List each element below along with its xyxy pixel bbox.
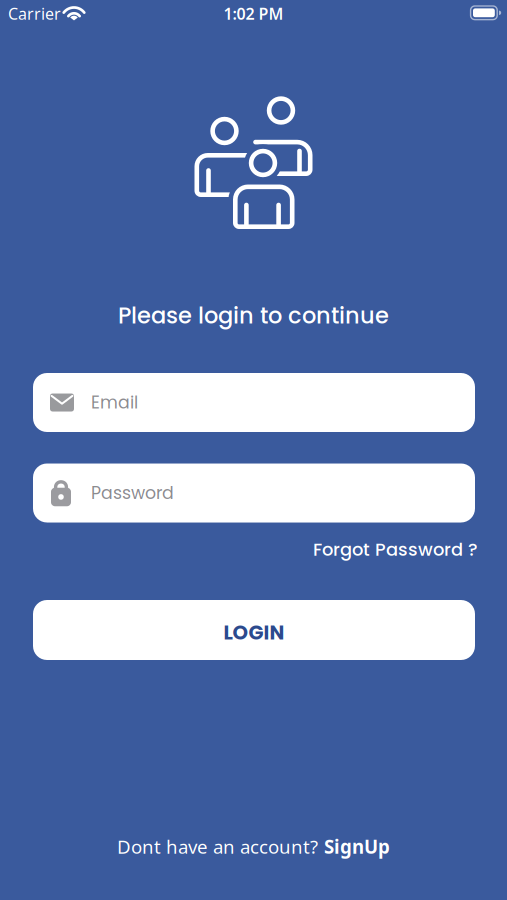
button[interactable]: Forgot Password ? (313, 537, 478, 562)
staticText: Password (91, 481, 174, 505)
button[interactable]: LOGIN (33, 600, 475, 660)
staticText: LOGIN (223, 619, 284, 646)
staticText: 1:02 PM (223, 3, 283, 24)
button[interactable]: Email (33, 373, 475, 432)
staticText: Forgot Password ? (313, 537, 478, 562)
staticText: Email (91, 390, 138, 415)
staticText: Carrier (8, 3, 61, 24)
staticText: SignUp (324, 834, 390, 859)
button[interactable]: Password (33, 463, 475, 522)
staticText: Please login to continue (118, 300, 389, 331)
staticText: Dont have an account? (117, 834, 318, 859)
button[interactable]: SignUp (324, 834, 390, 859)
